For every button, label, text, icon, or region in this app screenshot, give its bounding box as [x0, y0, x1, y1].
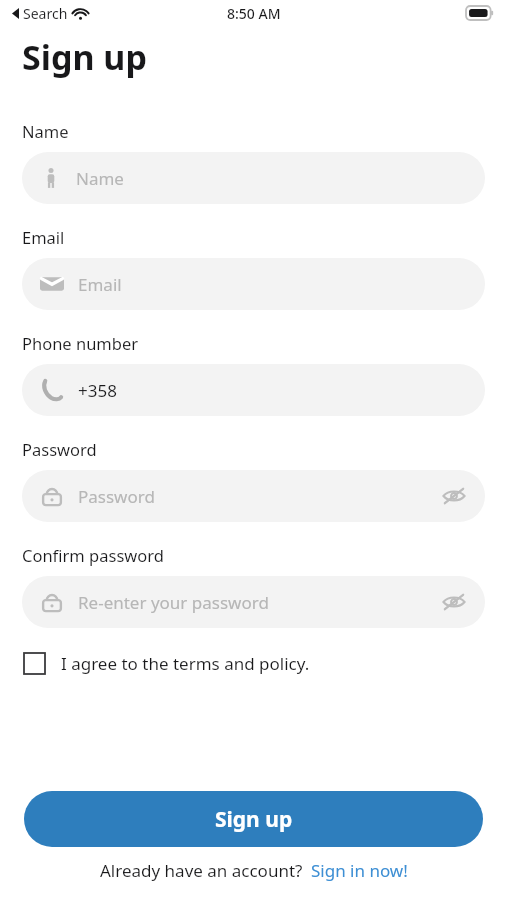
staticText: I agree to the terms and policy. — [61, 652, 310, 675]
button[interactable]: Name — [22, 152, 485, 204]
button[interactable]: Password — [22, 470, 485, 522]
staticText: Email — [22, 226, 65, 248]
staticText: Name — [76, 167, 469, 190]
staticText: 8:50 AM — [227, 4, 281, 23]
staticText: Email — [78, 273, 469, 296]
button[interactable]: Sign in now! — [311, 859, 408, 882]
button[interactable]: +358 — [22, 364, 485, 416]
staticText: Password — [22, 438, 97, 460]
staticText: Re-enter your password — [78, 591, 439, 614]
staticText: Password — [78, 485, 439, 508]
staticText: Sign up — [215, 805, 293, 834]
staticText: Already have an account? — [100, 859, 303, 882]
staticText: Search — [23, 4, 68, 23]
button[interactable]: Show password — [439, 587, 469, 617]
staticText: Confirm password — [22, 544, 164, 566]
staticText: +358 — [78, 379, 469, 402]
button[interactable]: Re-enter your password — [22, 576, 485, 628]
button[interactable]: Email — [22, 258, 485, 310]
button[interactable]: Sign up — [24, 791, 483, 847]
staticText: Phone number — [22, 332, 139, 354]
staticText: Name — [22, 120, 69, 142]
staticText: Sign up — [22, 34, 147, 80]
button[interactable]: I agree to the terms and policy. — [22, 646, 312, 681]
button[interactable]: Show password — [439, 481, 469, 511]
staticText: Sign in now! — [311, 859, 408, 882]
